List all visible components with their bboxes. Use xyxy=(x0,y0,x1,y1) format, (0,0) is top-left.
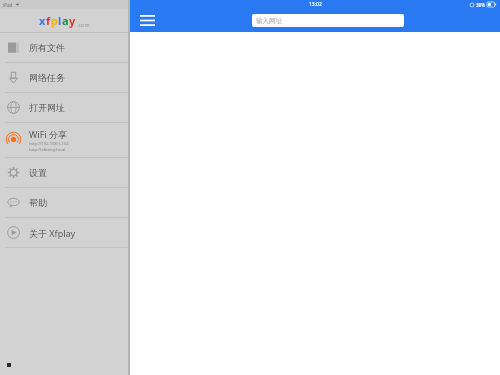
staticText: y xyxy=(69,13,76,28)
staticText: f xyxy=(46,13,51,28)
button[interactable]: 输入网址 xyxy=(252,14,404,27)
staticText: WiFi 分享 xyxy=(29,128,68,140)
button[interactable]: 帮助 xyxy=(0,188,128,217)
staticText: 13:02 xyxy=(309,1,322,8)
staticText: 输入网址 xyxy=(256,17,282,25)
staticText: 帮助 xyxy=(29,197,47,208)
button[interactable]: 打开网址 xyxy=(0,93,128,122)
staticText: a xyxy=(62,13,69,28)
button[interactable]: 设置 xyxy=(0,158,128,187)
staticText: 关于 Xfplay xyxy=(29,227,76,239)
staticText: l xyxy=(58,13,62,28)
staticText: http://192.168.1.154 xyxy=(29,141,69,147)
staticText: p xyxy=(51,13,58,28)
button[interactable]: 所有文件 xyxy=(0,33,128,62)
button[interactable]: 网络任务 xyxy=(0,63,128,92)
staticText: 所有文件 xyxy=(29,42,65,53)
staticText: .com xyxy=(77,21,90,28)
staticText: 网络任务 xyxy=(29,72,65,83)
staticText: http://xfating.local xyxy=(29,147,66,153)
staticText: 打开网址 xyxy=(29,102,65,113)
staticText: x xyxy=(39,13,46,28)
staticText: 设置 xyxy=(29,167,47,178)
button[interactable]: Menu xyxy=(137,12,157,29)
button[interactable]: 关于 Xfplay xyxy=(0,218,128,247)
staticText: 38% xyxy=(476,2,485,8)
button[interactable]: WiFi 分享 xyxy=(0,123,128,157)
staticText: iPad xyxy=(3,2,13,8)
